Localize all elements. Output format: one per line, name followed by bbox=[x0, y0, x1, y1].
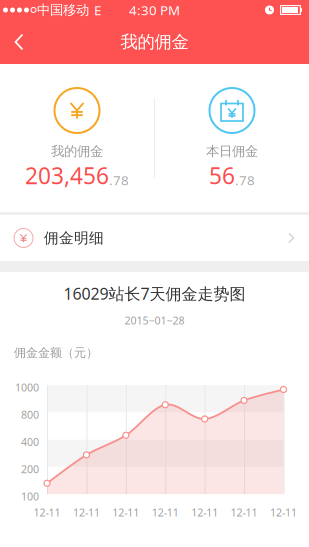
staticText: 我的佣金 bbox=[51, 143, 103, 159]
staticText: 800 bbox=[21, 407, 39, 422]
staticText: 12-11 bbox=[33, 505, 60, 519]
staticText: .78 bbox=[109, 171, 129, 189]
staticText: 佣金明细 bbox=[44, 229, 104, 247]
staticText: 本日佣金 bbox=[206, 143, 258, 159]
staticText: 12-11 bbox=[231, 505, 258, 519]
staticText: 16029站长7天佣金走势图 bbox=[63, 283, 245, 304]
staticText: 4:30 PM bbox=[129, 1, 180, 19]
staticText: 12-11 bbox=[73, 505, 100, 519]
staticText: 12-11 bbox=[270, 505, 297, 519]
staticText: 400 bbox=[21, 435, 39, 449]
staticText: .78 bbox=[235, 171, 255, 189]
staticText: 1000 bbox=[15, 380, 39, 394]
staticText: 2015−01−28 bbox=[124, 313, 184, 327]
staticText: 我的佣金 bbox=[120, 31, 188, 53]
staticText: 56 bbox=[209, 160, 235, 190]
staticText: 100 bbox=[21, 489, 39, 503]
button[interactable]: Back bbox=[0, 20, 38, 64]
staticText: 中国移动 bbox=[37, 2, 89, 18]
staticText: 203,456 bbox=[25, 160, 109, 190]
staticText: E bbox=[94, 1, 101, 19]
button[interactable]: 佣金明细 bbox=[0, 215, 309, 261]
staticText: 200 bbox=[21, 462, 39, 476]
staticText: 12-11 bbox=[152, 505, 179, 519]
staticText: 12-11 bbox=[112, 505, 139, 519]
staticText: 12-11 bbox=[191, 505, 218, 519]
staticText: 佣金金额（元） bbox=[14, 345, 98, 360]
